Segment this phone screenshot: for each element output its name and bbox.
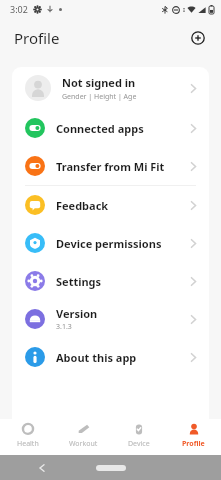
staticText: Profile	[182, 439, 205, 449]
button[interactable]: Transfer from Mi Fit	[12, 147, 209, 185]
staticText: Not signed in	[62, 75, 136, 90]
staticText: Gender | Height | Age	[62, 92, 137, 102]
staticText: Health	[17, 439, 39, 449]
button[interactable]: Connected apps	[12, 109, 209, 147]
staticText: Connected apps	[56, 121, 144, 136]
staticText: Profile	[14, 28, 60, 48]
button[interactable]: Health	[0, 419, 56, 449]
button[interactable]: Device permissions	[12, 224, 209, 262]
staticText: Settings	[56, 274, 102, 289]
staticText: 3:02	[10, 3, 28, 15]
button[interactable]: Version	[12, 300, 209, 338]
staticText: Transfer from Mi Fit	[56, 159, 165, 174]
staticText: Device permissions	[56, 236, 162, 251]
button[interactable]: Workout	[56, 419, 111, 449]
button[interactable]: Device	[111, 419, 166, 449]
button[interactable]: Profile	[166, 419, 221, 449]
button[interactable]: Settings	[12, 262, 209, 300]
staticText: Version	[56, 306, 98, 321]
staticText: 3.1.3	[56, 322, 72, 332]
staticText: Feedback	[56, 198, 109, 213]
button[interactable]: Feedback	[12, 186, 209, 224]
button[interactable]: About this app	[12, 338, 209, 376]
button[interactable]: Add	[187, 27, 209, 49]
staticText: Workout	[69, 439, 98, 449]
staticText: About this app	[56, 350, 137, 365]
button[interactable]: Not signed in	[12, 67, 209, 109]
staticText: Device	[128, 439, 150, 449]
